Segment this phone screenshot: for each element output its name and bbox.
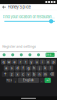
button[interactable]: Back: [2, 4, 6, 10]
button[interactable]: s: [9, 65, 14, 71]
staticText: Search: [46, 53, 55, 56]
button[interactable]: Find your location or restaurant name: [0, 10, 55, 19]
button[interactable]: z: [9, 72, 14, 77]
button[interactable]: ⏎: [44, 78, 51, 83]
staticText: ⌫: [50, 72, 54, 76]
staticText: i: [42, 60, 43, 64]
button[interactable]: f: [20, 65, 25, 71]
button[interactable]: k: [43, 65, 48, 71]
staticText: l: [50, 66, 51, 70]
button[interactable]: ⌫: [48, 72, 55, 77]
staticText: ?123: [6, 79, 12, 82]
button[interactable]: x: [15, 72, 20, 77]
staticText: y: [30, 60, 32, 64]
button[interactable]: e: [12, 59, 17, 64]
staticText: Register and settings: [2, 44, 36, 49]
staticText: n: [39, 72, 41, 76]
button[interactable]: p: [51, 59, 56, 64]
staticText: Find your location or restaurant name: [3, 15, 55, 19]
button[interactable]: Register and settings: [0, 10, 42, 48]
staticText: m: [44, 72, 47, 76]
staticText: ↑: [4, 72, 7, 76]
staticText: p: [52, 60, 54, 64]
staticText: g: [27, 66, 29, 70]
button[interactable]: t: [23, 59, 28, 64]
button[interactable]: y: [29, 59, 34, 64]
button[interactable]: g: [26, 65, 31, 71]
staticText: a: [5, 66, 7, 70]
button[interactable]: n: [37, 72, 42, 77]
button[interactable]: w: [7, 59, 12, 64]
button[interactable]: English: [18, 78, 39, 83]
button[interactable]: Keyboard tool: [11, 53, 14, 56]
staticText: z: [11, 72, 13, 76]
button[interactable]: v: [26, 72, 31, 77]
button[interactable]: c: [20, 72, 25, 77]
button[interactable]: b: [32, 72, 37, 77]
button[interactable]: .: [39, 78, 44, 83]
button[interactable]: ?123: [6, 78, 12, 83]
button[interactable]: i: [40, 59, 45, 64]
staticText: ,: [15, 78, 16, 82]
button[interactable]: h: [32, 65, 37, 71]
staticText: w: [8, 60, 11, 64]
button[interactable]: Keyboard tool: [37, 53, 40, 56]
button[interactable]: ,: [13, 78, 17, 83]
staticText: d: [16, 66, 18, 70]
staticText: .: [41, 78, 42, 82]
button[interactable]: a: [4, 65, 9, 71]
button[interactable]: q: [1, 59, 6, 64]
button[interactable]: ↑: [2, 72, 9, 77]
button[interactable]: l: [48, 65, 53, 71]
staticText: b: [33, 72, 35, 76]
button[interactable]: Search: [46, 53, 55, 57]
staticText: f: [22, 66, 23, 70]
button[interactable]: d: [15, 65, 20, 71]
button[interactable]: Keyboard tool: [3, 53, 6, 56]
button[interactable]: r: [18, 59, 23, 64]
staticText: o: [47, 60, 49, 64]
staticText: e: [14, 60, 16, 64]
staticText: v: [27, 72, 29, 76]
staticText: q: [2, 60, 4, 64]
button[interactable]: u: [34, 59, 39, 64]
staticText: x: [16, 72, 18, 76]
staticText: English: [23, 79, 34, 82]
staticText: Honey Spice: [8, 5, 31, 10]
staticText: t: [25, 60, 26, 64]
staticText: ⏎: [46, 78, 49, 82]
staticText: h: [33, 66, 35, 70]
staticText: j: [39, 66, 40, 70]
staticText: c: [22, 72, 24, 76]
staticText: k: [44, 66, 46, 70]
button[interactable]: Keyboard tool: [28, 53, 31, 56]
button[interactable]: Keyboard tool: [20, 53, 23, 56]
staticText: s: [11, 66, 13, 70]
button[interactable]: o: [45, 59, 50, 64]
staticText: u: [36, 60, 38, 64]
button[interactable]: m: [43, 72, 48, 77]
staticText: r: [20, 60, 21, 64]
button[interactable]: j: [37, 65, 42, 71]
